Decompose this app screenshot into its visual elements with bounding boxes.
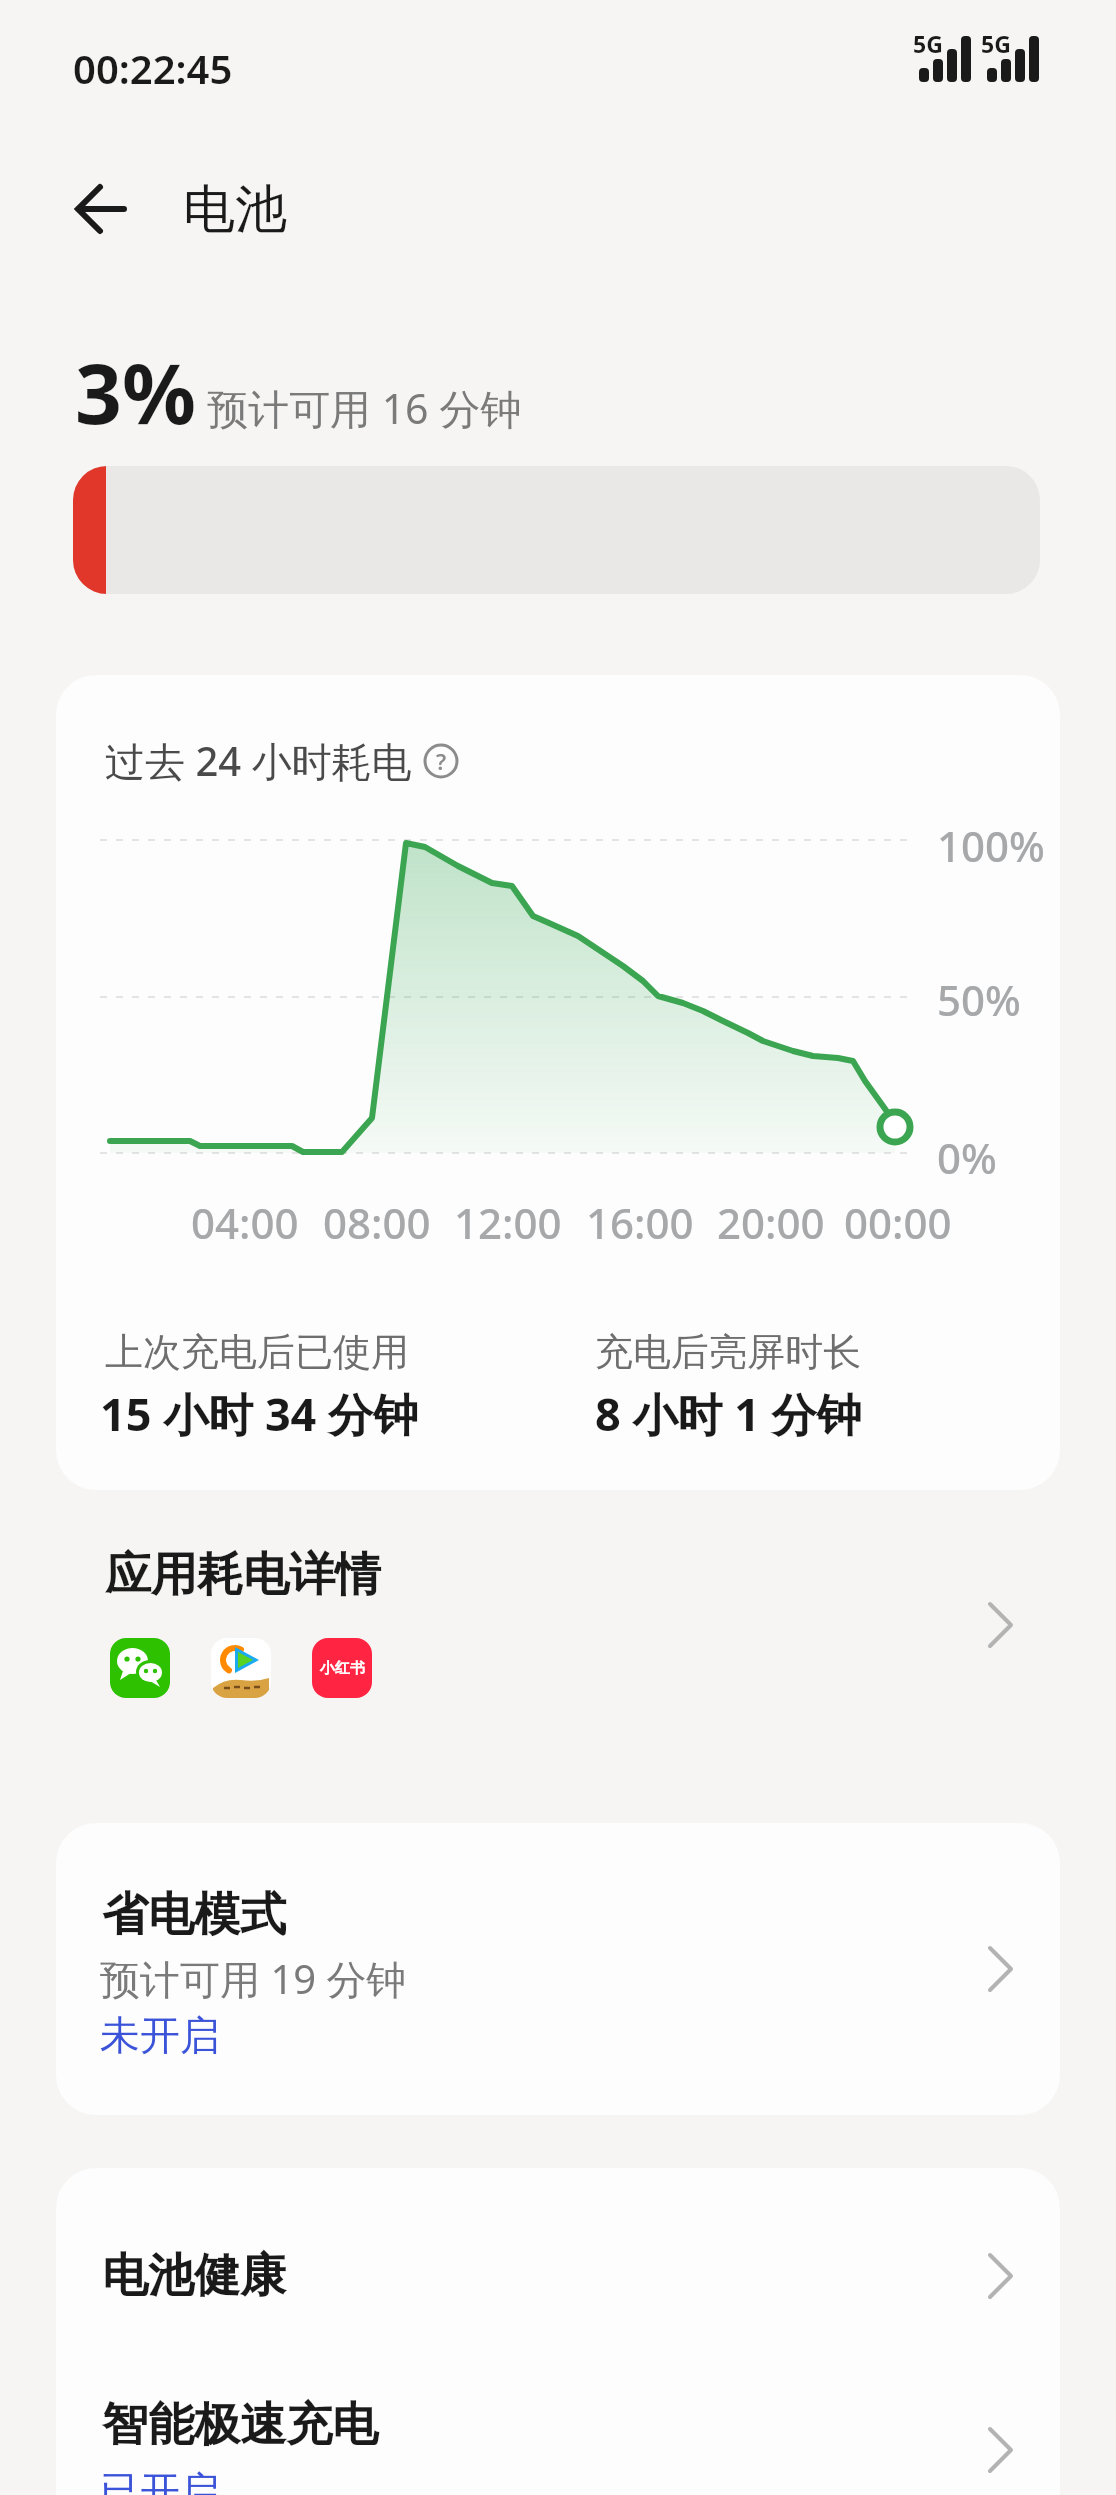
staticText: 00:22:45	[73, 41, 233, 95]
staticText: 100%	[937, 817, 1045, 874]
staticText: 0%	[937, 1129, 997, 1186]
staticText: 3%	[75, 336, 196, 448]
staticText: 15 小时 34 分钟	[100, 1383, 419, 1444]
staticText: 04:00	[191, 1194, 299, 1251]
staticText: 电池健康	[102, 2247, 286, 2305]
button[interactable]	[56, 1510, 1060, 1740]
staticText: 应用耗电详情	[105, 1546, 381, 1604]
staticText: 预计可用 19 分钟	[100, 1951, 407, 2006]
staticText: 未开启	[100, 2010, 220, 2060]
staticText: 过去 24 小时耗电	[105, 733, 412, 788]
button[interactable]	[56, 2383, 1060, 2495]
button[interactable]: 小红书	[312, 1638, 372, 1698]
staticText: 已开启	[100, 2466, 220, 2495]
staticText: 上次充电后已使用	[105, 1328, 409, 1376]
staticText: 充电后亮屏时长	[595, 1328, 861, 1376]
staticText: 00:00	[844, 1194, 952, 1251]
staticText: 16:00	[586, 1194, 694, 1251]
staticText: 省电模式	[102, 1886, 286, 1944]
button[interactable]	[60, 175, 140, 245]
staticText: 20:00	[717, 1194, 825, 1251]
staticText: 5G	[913, 28, 943, 59]
button[interactable]	[56, 2168, 1060, 2383]
staticText: 智能极速充电	[102, 2396, 378, 2454]
staticText: 8 小时 1 分钟	[595, 1383, 862, 1444]
staticText: 预计可用 16 分钟	[207, 380, 522, 436]
staticText: 08:00	[323, 1194, 431, 1251]
staticText: 50%	[937, 971, 1021, 1028]
staticText: 5G	[981, 28, 1011, 59]
staticText: 电池	[183, 177, 287, 243]
staticText: 12:00	[454, 1194, 562, 1251]
staticText: ?	[436, 746, 447, 776]
button[interactable]	[56, 1823, 1060, 2115]
staticText: 小红书	[320, 1659, 365, 1678]
